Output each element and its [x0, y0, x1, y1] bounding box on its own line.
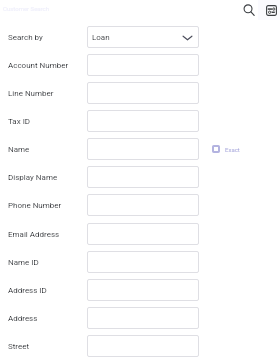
staticText: Search by: [8, 33, 43, 42]
button[interactable]: [87, 194, 199, 216]
button[interactable]: [87, 166, 199, 188]
button[interactable]: [87, 335, 199, 357]
staticText: Email Address: [8, 230, 60, 239]
button[interactable]: [87, 223, 199, 245]
button[interactable]: [87, 138, 199, 160]
button[interactable]: [87, 307, 199, 329]
button[interactable]: [87, 251, 199, 273]
staticText: Account Number: [8, 61, 69, 70]
button[interactable]: [87, 54, 199, 76]
button[interactable]: [87, 82, 199, 104]
staticText: Customer Search: [3, 5, 50, 12]
button[interactable]: Loan: [87, 26, 199, 48]
staticText: Name ID: [8, 258, 39, 267]
staticText: Address: [8, 314, 38, 323]
staticText: Line Number: [8, 89, 54, 98]
button[interactable]: Search: [240, 1, 258, 19]
staticText: Street: [8, 342, 30, 351]
staticText: Name: [8, 145, 30, 154]
staticText: Phone Number: [8, 201, 62, 210]
button[interactable]: [87, 110, 199, 132]
staticText: Loan: [92, 33, 110, 42]
button[interactable]: Settings: [262, 1, 280, 19]
staticText: Tax ID: [8, 117, 31, 126]
staticText: Address ID: [8, 286, 47, 295]
staticText: Exact: [225, 146, 240, 153]
button[interactable]: [87, 279, 199, 301]
button[interactable]: Customer Search: [3, 5, 50, 12]
staticText: Display Name: [8, 173, 58, 182]
button[interactable]: Exact: [212, 145, 240, 153]
